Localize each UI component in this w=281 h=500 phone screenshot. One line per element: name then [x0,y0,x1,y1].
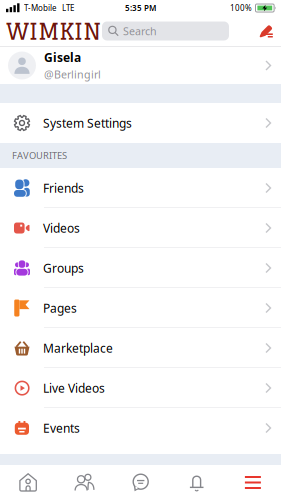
staticText: 100% [230,3,252,13]
staticText: FAVOURITES [12,149,67,162]
button[interactable]: Marketplace [0,328,281,368]
staticText: Events [43,420,80,436]
button[interactable]: Search [102,21,229,40]
staticText: System Settings [43,115,132,131]
button[interactable]: System Settings [0,103,281,143]
button[interactable]: Videos [0,208,281,248]
staticText: WIMKIN [6,18,101,44]
button[interactable]: Compose post [259,24,273,38]
staticText: @Berlingirl [44,67,101,82]
button[interactable]: Menu [225,475,281,489]
staticText: Videos [43,220,80,236]
button[interactable]: Messages [112,473,169,491]
staticText: T-Mobile [24,3,57,13]
staticText: Search [123,24,157,38]
staticText: Groups [43,260,84,276]
button[interactable]: Live Videos [0,368,281,408]
button[interactable]: Friends [0,168,281,208]
button[interactable]: Groups [0,248,281,288]
button[interactable]: Notifications [169,473,225,491]
staticText: Gisela [44,49,81,65]
button[interactable]: Home [0,473,56,492]
button[interactable]: Friends [56,473,112,491]
staticText: 5:35 PM [125,3,156,13]
staticText: LTE [62,3,74,13]
button[interactable]: Events [0,408,281,448]
staticText: Pages [43,300,77,316]
button[interactable]: Pages [0,288,281,328]
staticText: Friends [43,180,84,196]
staticText: Marketplace [43,340,113,356]
button[interactable]: Gisela [0,47,281,84]
staticText: Live Videos [43,380,105,396]
